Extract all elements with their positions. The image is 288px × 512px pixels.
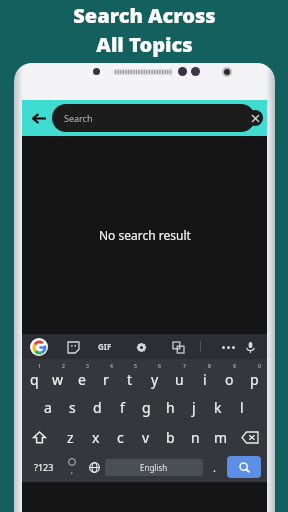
button[interactable]: Search [52, 104, 255, 132]
staticText: 0 [258, 363, 261, 370]
staticText: 9 [233, 363, 236, 370]
staticText: c [117, 428, 124, 447]
staticText: b [166, 428, 175, 447]
staticText: English [140, 462, 168, 473]
staticText: d [93, 398, 102, 417]
button[interactable]: More options [218, 337, 238, 357]
staticText: 7 [183, 363, 186, 370]
button[interactable]: b [158, 422, 183, 452]
staticText: r [103, 370, 109, 389]
staticText: l [240, 398, 244, 417]
staticText: g [142, 398, 151, 417]
button[interactable]: Emoji [61, 452, 83, 482]
button[interactable]: Back [25, 105, 51, 131]
staticText: 3 [86, 363, 89, 370]
button[interactable]: 0 [242, 362, 267, 392]
staticText: i [203, 370, 207, 389]
staticText: e [78, 370, 86, 389]
button[interactable]: Clear search [247, 110, 263, 126]
button[interactable]: Voice input [241, 338, 259, 356]
button[interactable]: 3 [70, 362, 94, 392]
staticText: , [71, 466, 73, 476]
button[interactable]: English [105, 459, 203, 476]
button[interactable]: s [60, 392, 85, 422]
staticText: h [166, 398, 175, 417]
button[interactable]: Stickers [64, 338, 82, 356]
button[interactable]: 1 [22, 362, 46, 392]
button[interactable]: 5 [118, 362, 142, 392]
button[interactable]: d [85, 392, 110, 422]
button[interactable]: Backspace [233, 422, 267, 452]
staticText: q [30, 370, 39, 389]
button[interactable]: 6 [142, 362, 167, 392]
button[interactable]: Settings [132, 338, 150, 356]
button[interactable]: z [57, 422, 83, 452]
button[interactable]: Change language [83, 452, 105, 482]
staticText: o [225, 370, 234, 389]
staticText: No search result [99, 227, 191, 243]
button[interactable]: a [35, 392, 60, 422]
staticText: j [192, 398, 196, 417]
button[interactable]: . [203, 452, 225, 482]
staticText: Search [64, 112, 93, 124]
button[interactable]: g [134, 392, 158, 422]
button[interactable]: m [208, 422, 233, 452]
button[interactable]: 9 [217, 362, 242, 392]
staticText: s [69, 398, 76, 417]
staticText: k [214, 398, 222, 417]
staticText: a [44, 398, 52, 417]
staticText: z [67, 428, 74, 447]
button[interactable]: l [230, 392, 254, 422]
button[interactable]: 4 [94, 362, 118, 392]
staticText: 2 [62, 363, 65, 370]
staticText: x [92, 428, 100, 447]
staticText: f [120, 398, 125, 417]
staticText: m [214, 428, 228, 447]
button[interactable]: n [183, 422, 208, 452]
button[interactable]: 7 [167, 362, 192, 392]
staticText: All Topics [96, 31, 193, 58]
staticText: ?123 [34, 461, 54, 473]
staticText: v [142, 428, 150, 447]
staticText: 1 [38, 363, 41, 370]
staticText: Search Across [73, 2, 216, 29]
button[interactable]: Shift [22, 422, 57, 452]
button[interactable]: Google [30, 338, 48, 356]
staticText: 4 [110, 363, 113, 370]
staticText: . [213, 460, 216, 475]
staticText: u [175, 370, 184, 389]
staticText: 5 [134, 363, 137, 370]
staticText: 8 [208, 363, 211, 370]
button[interactable]: f [110, 392, 134, 422]
staticText: w [52, 370, 64, 389]
button[interactable]: ?123 [26, 452, 61, 482]
button[interactable]: GIF [98, 341, 112, 352]
staticText: y [151, 370, 159, 389]
button[interactable]: Search [227, 456, 261, 478]
staticText: t [127, 370, 133, 389]
button[interactable]: v [133, 422, 158, 452]
button[interactable]: x [83, 422, 108, 452]
staticText: p [250, 370, 259, 389]
staticText: 6 [158, 363, 161, 370]
staticText: n [191, 428, 200, 447]
button[interactable]: 8 [192, 362, 217, 392]
button[interactable]: j [182, 392, 206, 422]
button[interactable]: 2 [46, 362, 70, 392]
button[interactable]: c [108, 422, 133, 452]
button[interactable]: Translate [169, 338, 187, 356]
button[interactable]: h [158, 392, 182, 422]
button[interactable]: k [206, 392, 230, 422]
